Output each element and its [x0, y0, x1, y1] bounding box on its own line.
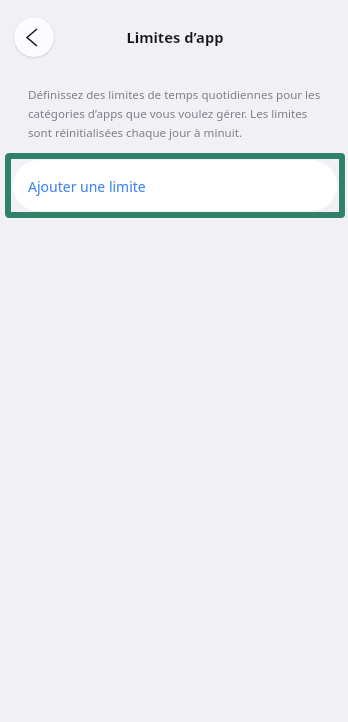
staticText: Ajouter une limite — [28, 177, 146, 196]
staticText: Définissez des limites de temps quotidie… — [28, 87, 328, 140]
button[interactable]: Back — [14, 17, 54, 57]
staticText: Limites d’app — [1, 27, 348, 47]
button[interactable]: Ajouter une limite — [13, 160, 337, 211]
